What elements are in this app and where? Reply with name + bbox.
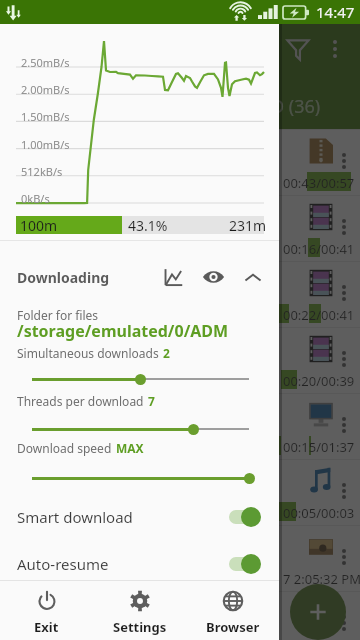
button[interactable]: Slider [0, 465, 279, 491]
staticText: 2.50mB/s [21, 55, 70, 70]
button[interactable]: Add download [290, 584, 346, 640]
staticText: 43.1% [128, 216, 168, 234]
other: Filter [286, 37, 310, 61]
staticText: 00:43/00:57 [283, 174, 355, 192]
button[interactable]: 00:22/00:41 [0, 261, 360, 327]
button[interactable]: Show speed [193, 257, 233, 297]
staticText: 00:20/00:39 [283, 372, 355, 390]
staticText: 0kB/s [21, 191, 50, 206]
staticText: 7 2:05:32 PM [283, 636, 360, 640]
staticText: 00:22/00:41 [283, 306, 355, 324]
staticText: 00:16/00:41 [283, 240, 355, 258]
staticText: 1.00mB/s [21, 137, 70, 152]
button[interactable]: 00:15/01:37 [0, 393, 360, 459]
staticText: D (36) [271, 94, 321, 119]
button[interactable]: /storage/emulated/0/ADM [17, 320, 229, 342]
button[interactable]: Collapse [233, 257, 273, 297]
button[interactable]: 00:05/00:03 [0, 459, 360, 525]
staticText: 00:15/01:37 [283, 438, 355, 456]
staticText: Settings [113, 618, 167, 636]
staticText: 14:47 [316, 2, 355, 22]
staticText: Smart download [17, 507, 133, 527]
staticText: Browser [206, 618, 260, 636]
button[interactable]: Smart download [0, 497, 279, 537]
staticText: Downloading [17, 268, 110, 287]
staticText: 231m [229, 216, 267, 234]
staticText: 100m [20, 216, 58, 234]
button[interactable]: 7 2:05:32 PM [0, 591, 360, 640]
button[interactable]: Settings [93, 581, 186, 640]
staticText: 2.00mB/s [21, 82, 70, 97]
staticText: Exit [34, 618, 59, 636]
button[interactable]: Exit [0, 581, 93, 640]
button[interactable]: Slider [0, 416, 279, 442]
button[interactable]: Browser [186, 581, 279, 640]
staticText: Simultaneous downloads [17, 345, 159, 361]
button[interactable]: 00:43/00:57 [0, 129, 360, 195]
staticText: 1.50mB/s [21, 109, 70, 124]
staticText: 7 2:05:32 PM [283, 570, 360, 588]
staticText: Folder for files [17, 307, 99, 323]
button[interactable]: 7 2:05:32 PM [0, 525, 360, 591]
staticText: Download speed [17, 440, 112, 456]
staticText: 00:05/00:03 [283, 504, 355, 522]
staticText: 7 [148, 393, 155, 409]
staticText: MAX [116, 440, 144, 456]
staticText: 512kB/s [21, 164, 63, 179]
staticText: Threads per download [17, 393, 144, 409]
staticText: 2 [163, 345, 170, 361]
button[interactable]: Speed chart [153, 257, 193, 297]
button[interactable]: Auto-resume [0, 544, 279, 584]
button[interactable]: Slider [0, 366, 279, 392]
button[interactable]: 00:16/00:41 [0, 195, 360, 261]
staticText: Auto-resume [17, 554, 109, 574]
button[interactable]: 00:20/00:39 [0, 327, 360, 393]
